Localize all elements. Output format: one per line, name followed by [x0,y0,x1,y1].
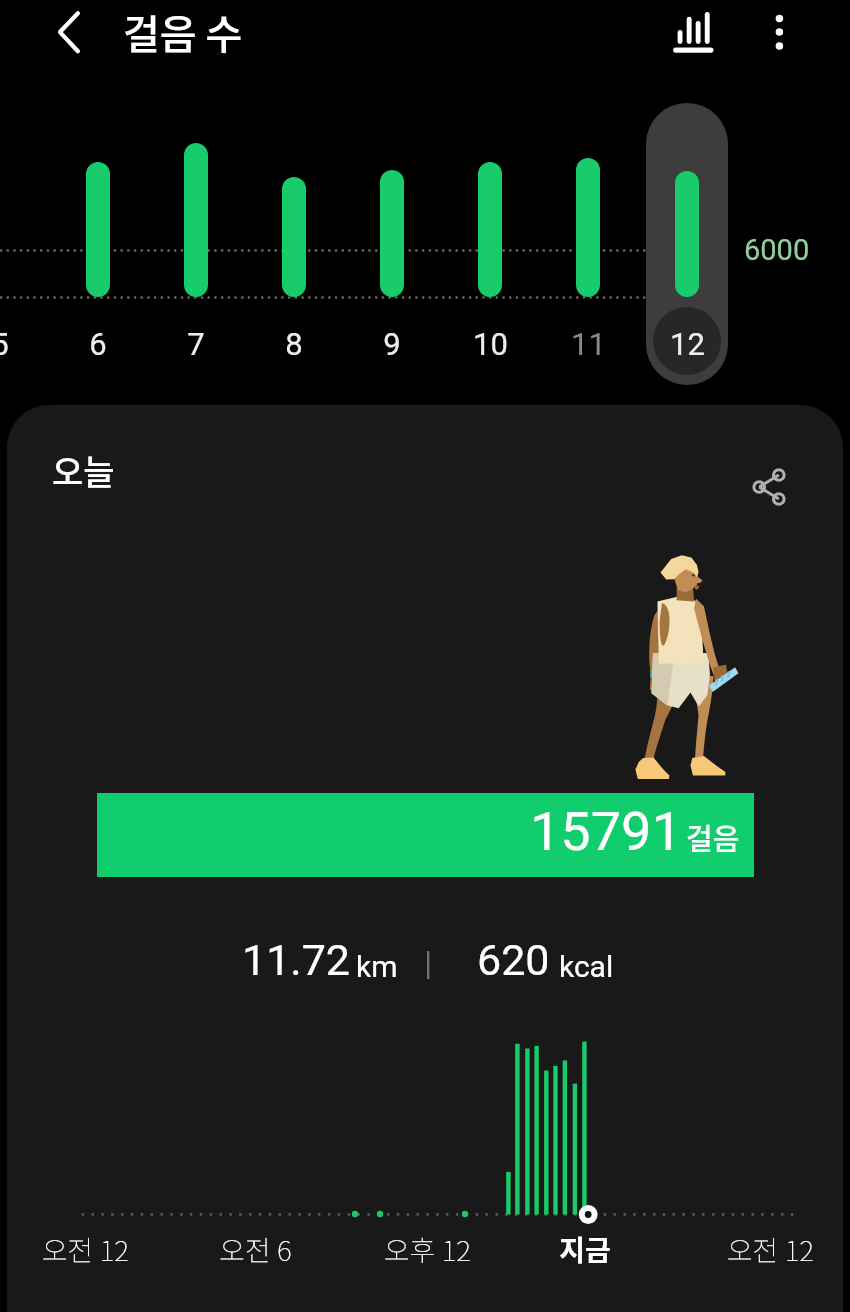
button[interactable]: 15791 [97,793,754,877]
staticText: 11.72 [242,935,351,985]
staticText: kcal [559,949,614,984]
button[interactable]: Share [726,444,812,530]
staticText: 12 [670,326,705,362]
staticText: 오전 6 [219,1229,292,1270]
button[interactable]: 오늘 [52,446,122,498]
button[interactable]: Weekly chart [659,0,727,68]
staticText: 지금 [559,1229,611,1270]
staticText: km [356,949,398,984]
button[interactable]: 12 [647,324,727,364]
staticText: 7 [187,326,205,362]
button[interactable]: 7 [156,324,236,364]
staticText: 6000 [744,233,810,267]
staticText: 오전 12 [42,1229,129,1270]
button[interactable]: 9 [352,324,432,364]
button[interactable]: 6 [58,324,138,364]
staticText: 15791 [530,800,682,863]
button[interactable]: More options [748,0,812,64]
staticText: 6 [89,326,107,362]
button[interactable]: 5 [0,324,40,364]
button[interactable]: Back [36,2,104,70]
staticText: 5 [0,326,9,362]
staticText: 오늘 [52,446,115,495]
staticText: 오후 12 [384,1229,471,1270]
staticText: 620 [477,935,550,985]
staticText: 걸음 수 [123,3,243,61]
staticText: 10 [473,326,508,362]
staticText: 오전 12 [727,1229,814,1270]
button[interactable]: 11 [548,324,628,364]
staticText: 걸음 [686,816,740,858]
staticText: 9 [383,326,401,362]
staticText: 11 [571,326,606,362]
button[interactable]: 10 [450,324,530,364]
button[interactable]: 8 [254,324,334,364]
staticText: 8 [285,326,303,362]
